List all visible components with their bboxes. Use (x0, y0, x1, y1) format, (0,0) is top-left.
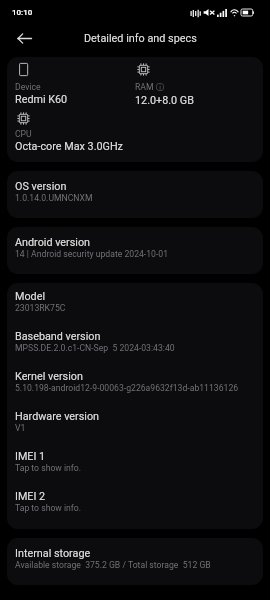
staticText: Model (15, 290, 46, 303)
staticText: OS version (15, 180, 67, 193)
staticText: Baseband version (15, 330, 101, 343)
staticText: 12.0+8.0 GB (135, 94, 194, 107)
button[interactable]: CPU (7, 107, 263, 162)
button[interactable]: Kernel version (7, 357, 263, 397)
button[interactable]: IMEI 2 (7, 477, 263, 517)
staticText: RAM ⓘ (135, 82, 165, 93)
staticText: Tap to show info. (15, 463, 82, 473)
staticText: IMEI 2 (15, 490, 46, 503)
button[interactable]: RAM ⓘ (135, 63, 263, 107)
staticText: Available storage 375.2 GB / Total stora… (15, 560, 211, 570)
button[interactable]: Baseband version (7, 317, 263, 357)
staticText: 5.10.198-android12-9-00063-g226a9632f13d… (15, 383, 239, 393)
staticText: 10:10 (12, 8, 33, 17)
staticText: V1 (15, 423, 26, 433)
button[interactable]: Android version (7, 227, 263, 274)
button[interactable]: Model (7, 289, 263, 317)
staticText: Device (15, 82, 41, 92)
button[interactable]: Internal storage (7, 538, 263, 585)
button[interactable]: Hardware version (7, 397, 263, 437)
staticText: 1.0.14.0.UMNCNXM (15, 193, 93, 203)
staticText: IMEI 1 (15, 450, 46, 463)
staticText: Detailed info and specs (84, 32, 197, 45)
staticText: CPU (15, 129, 32, 139)
staticText: Android version (15, 236, 91, 249)
staticText: 23013RK75C (15, 303, 66, 313)
staticText: 14 | Android security update 2024-10-01 (15, 249, 169, 259)
staticText: Octa-core Max 3.0GHz (15, 140, 123, 153)
button[interactable]: Back (11, 25, 37, 51)
staticText: Kernel version (15, 370, 83, 383)
staticText: Hardware version (15, 410, 100, 423)
button[interactable]: IMEI 1 (7, 437, 263, 477)
staticText: Redmi K60 (15, 93, 68, 106)
button[interactable]: Device (7, 63, 135, 106)
staticText: MPSS.DE.2.0.c1-CN-Sep 5 2024-03:43:40 (15, 343, 175, 353)
staticText: Tap to show info. (15, 503, 82, 513)
button[interactable]: OS version (7, 171, 263, 218)
staticText: Internal storage (15, 547, 91, 560)
